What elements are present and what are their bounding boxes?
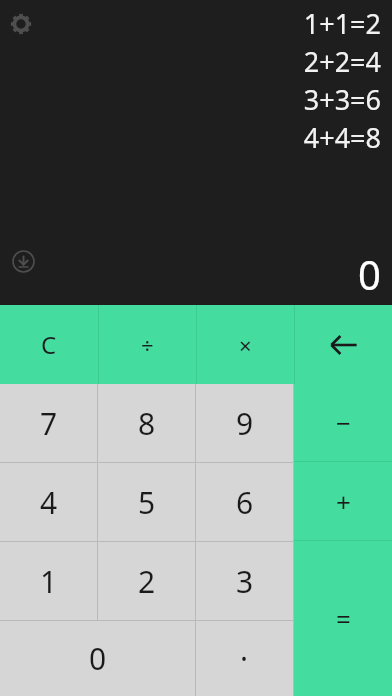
- button[interactable]: 8: [98, 384, 195, 462]
- button[interactable]: Backspace: [295, 305, 392, 384]
- staticText: 3+3=6: [303, 81, 381, 118]
- button[interactable]: ·: [196, 621, 293, 696]
- button[interactable]: 3: [196, 542, 293, 620]
- staticText: 0: [89, 638, 107, 679]
- button[interactable]: ÷: [99, 305, 196, 384]
- staticText: +: [336, 484, 351, 519]
- button[interactable]: C: [0, 305, 98, 384]
- button[interactable]: −: [294, 384, 392, 461]
- staticText: 7: [40, 403, 58, 444]
- button[interactable]: 1+1=2: [303, 4, 381, 156]
- staticText: 1+1=2: [303, 5, 381, 42]
- staticText: ÷: [141, 330, 154, 360]
- button[interactable]: Expand history: [10, 248, 36, 274]
- staticText: 9: [236, 403, 254, 444]
- staticText: 1: [40, 561, 58, 602]
- staticText: 0: [358, 247, 381, 301]
- staticText: 6: [236, 482, 254, 523]
- button[interactable]: 0: [0, 621, 195, 696]
- button[interactable]: =: [294, 541, 392, 696]
- button[interactable]: 5: [98, 463, 195, 541]
- staticText: 4: [40, 482, 58, 523]
- staticText: C: [41, 328, 57, 361]
- staticText: 8: [138, 403, 156, 444]
- button[interactable]: 2: [98, 542, 195, 620]
- button[interactable]: 1: [0, 542, 97, 620]
- button[interactable]: 7: [0, 384, 97, 462]
- button[interactable]: Settings: [7, 10, 35, 38]
- button[interactable]: 4: [0, 463, 97, 541]
- staticText: 2+2=4: [303, 43, 381, 80]
- button[interactable]: 9: [196, 384, 293, 462]
- button[interactable]: ×: [197, 305, 294, 384]
- staticText: ·: [240, 638, 249, 679]
- staticText: 5: [138, 482, 156, 523]
- button[interactable]: +: [294, 462, 392, 540]
- staticText: 3: [236, 561, 254, 602]
- staticText: 2: [138, 561, 156, 602]
- staticText: −: [336, 405, 351, 440]
- staticText: =: [336, 601, 351, 636]
- staticText: 4+4=8: [303, 119, 381, 156]
- button[interactable]: 6: [196, 463, 293, 541]
- staticText: ×: [239, 330, 252, 360]
